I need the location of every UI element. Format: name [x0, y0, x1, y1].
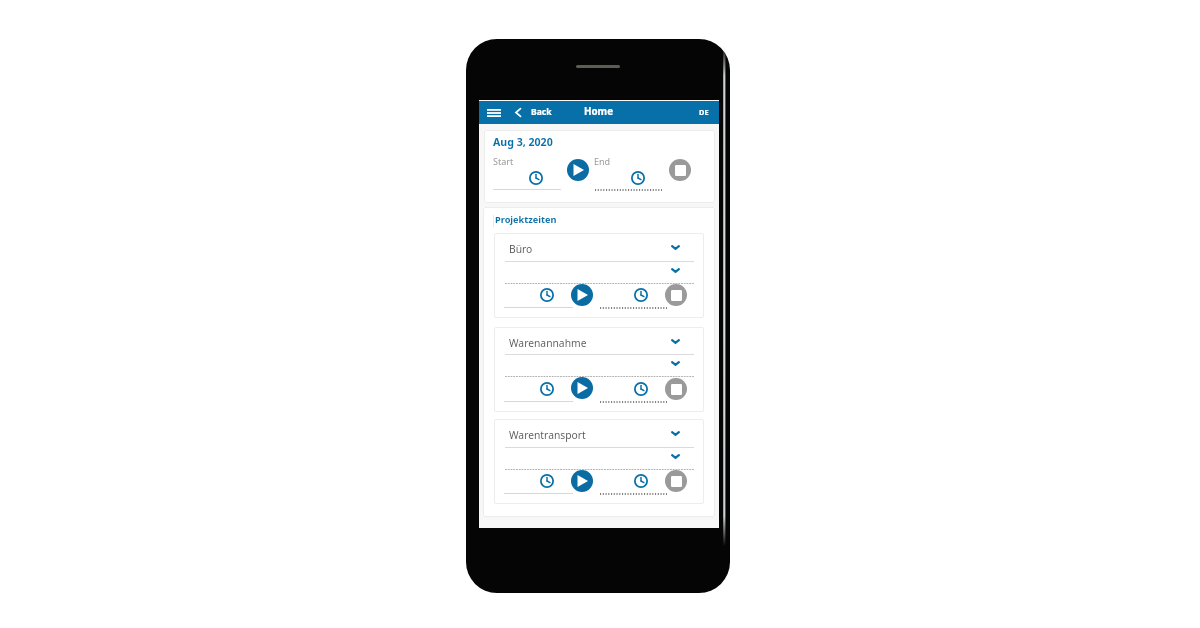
button[interactable]: Choose time — [634, 474, 648, 488]
button[interactable]: Back — [513, 105, 553, 120]
button[interactable]: Choose time — [529, 171, 543, 185]
button[interactable]: Stop timer — [665, 470, 687, 492]
button[interactable]: Warentransport — [505, 425, 694, 447]
staticText: Aug 3, 2020 — [493, 135, 553, 149]
button[interactable]: Start timer — [567, 159, 589, 181]
button[interactable]: Expand — [669, 241, 681, 253]
button[interactable]: Stop timer — [669, 159, 691, 181]
button[interactable]: Expand — [669, 450, 681, 462]
staticText: Warentransport — [509, 428, 586, 442]
button[interactable]: Choose time — [634, 288, 648, 302]
button[interactable]: Choose time — [540, 288, 554, 302]
staticText: End — [594, 155, 611, 167]
button[interactable]: Stop timer — [665, 284, 687, 306]
button[interactable]: Büro — [505, 239, 694, 261]
button[interactable]: Warenannahme — [505, 333, 694, 355]
staticText: Back — [531, 106, 552, 118]
button[interactable]: Expand — [669, 357, 681, 369]
button[interactable]: Stop timer — [665, 378, 687, 400]
staticText: Home — [584, 105, 614, 118]
button[interactable]: Choose time — [540, 474, 554, 488]
button[interactable]: Menu — [485, 107, 503, 119]
button[interactable]: Choose time — [631, 171, 645, 185]
button[interactable]: Choose time — [540, 382, 554, 396]
staticText: Projektzeiten — [495, 213, 557, 226]
staticText: Start — [493, 155, 514, 167]
button[interactable]: Start timer — [571, 377, 593, 399]
staticText: DE — [699, 107, 709, 117]
button[interactable]: DE — [694, 105, 714, 119]
button[interactable]: Start timer — [571, 470, 593, 492]
button[interactable]: Expand — [669, 264, 681, 276]
button[interactable]: Expand — [669, 335, 681, 347]
staticText: Warenannahme — [509, 336, 587, 350]
button[interactable]: Expand — [669, 427, 681, 439]
button[interactable]: Choose time — [634, 382, 648, 396]
staticText: Büro — [509, 242, 533, 256]
button[interactable]: Start timer — [571, 284, 593, 306]
